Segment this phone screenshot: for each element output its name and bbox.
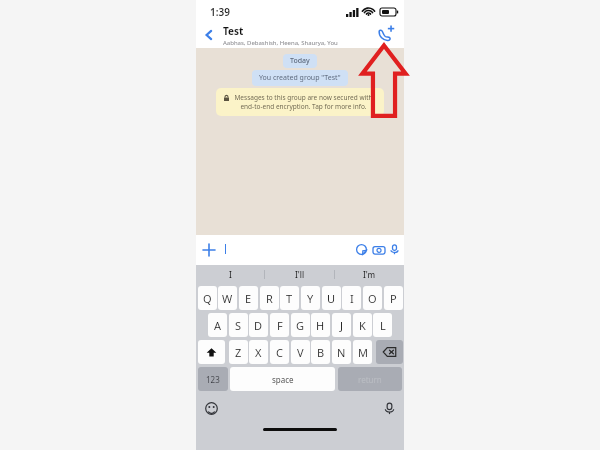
button[interactable]: I [196, 265, 264, 284]
staticText: Messages to this group are now secured w… [231, 93, 376, 111]
button[interactable]: K [353, 313, 372, 337]
staticText: You created group "Test" [259, 73, 341, 83]
button[interactable]: D [249, 313, 268, 337]
button[interactable] [220, 240, 352, 257]
button[interactable]: F [270, 313, 289, 337]
button[interactable]: Emoji [202, 399, 220, 417]
button[interactable]: Camera [371, 242, 386, 257]
staticText: Q [203, 291, 212, 306]
button[interactable]: New call [374, 24, 398, 44]
staticText: I'm [363, 269, 376, 280]
staticText: Today [290, 56, 310, 66]
button[interactable]: L [373, 313, 392, 337]
button[interactable]: I'm [335, 265, 404, 284]
button[interactable]: Voice message [387, 242, 401, 256]
staticText: G [296, 318, 305, 333]
button[interactable]: U [322, 286, 341, 310]
staticText: T [286, 291, 293, 306]
button[interactable]: Stickers [354, 242, 369, 257]
staticText: C [276, 345, 283, 360]
button[interactable]: Backspace [376, 340, 403, 364]
staticText: X [255, 345, 262, 360]
button[interactable]: space [230, 367, 335, 391]
button[interactable]: V [291, 340, 310, 364]
staticText: space [272, 374, 294, 385]
button[interactable]: 123 [198, 367, 228, 391]
staticText: O [368, 291, 377, 306]
staticText: I [229, 269, 232, 280]
button[interactable]: Messages to this group are now secured w… [216, 88, 384, 116]
button[interactable]: Back [198, 24, 220, 46]
button[interactable]: M [353, 340, 372, 364]
staticText: H [316, 318, 325, 333]
staticText: P [390, 291, 397, 306]
button[interactable]: E [239, 286, 258, 310]
staticText: N [337, 345, 346, 360]
staticText: U [327, 291, 336, 306]
button[interactable]: S [229, 313, 248, 337]
staticText: return [358, 374, 382, 385]
button[interactable]: Z [229, 340, 248, 364]
button[interactable]: N [332, 340, 351, 364]
button[interactable]: R [260, 286, 279, 310]
staticText: M [358, 345, 368, 360]
button[interactable]: Shift [198, 340, 225, 364]
button[interactable]: J [332, 313, 351, 337]
staticText: A [214, 318, 222, 333]
button[interactable]: X [249, 340, 268, 364]
button[interactable]: I [342, 286, 361, 310]
staticText: Y [307, 291, 314, 306]
staticText: E [245, 291, 252, 306]
button[interactable]: T [280, 286, 299, 310]
button[interactable]: Dictation [380, 399, 398, 417]
staticText: J [340, 318, 344, 333]
staticText: W [222, 291, 233, 306]
button[interactable]: H [311, 313, 330, 337]
staticText: L [380, 318, 386, 333]
button[interactable]: Y [301, 286, 320, 310]
staticText: Aabhas, Debashish, Heena, Shaurya, You [223, 39, 338, 47]
staticText: Z [235, 345, 242, 360]
button[interactable]: Attach [200, 241, 218, 259]
staticText: Test [223, 24, 244, 38]
staticText: I'll [295, 269, 305, 280]
staticText: R [266, 291, 273, 306]
button[interactable]: P [384, 286, 403, 310]
staticText: 123 [206, 374, 220, 385]
staticText: B [317, 345, 325, 360]
staticText: K [359, 318, 366, 333]
staticText: S [235, 318, 242, 333]
staticText: V [297, 345, 304, 360]
staticText: D [254, 318, 263, 333]
button[interactable]: W [218, 286, 237, 310]
button[interactable]: I'll [265, 265, 334, 284]
button[interactable]: O [363, 286, 382, 310]
button[interactable]: C [270, 340, 289, 364]
staticText: I [350, 291, 354, 306]
staticText: 1:39 [210, 5, 230, 19]
button[interactable]: A [208, 313, 227, 337]
staticText: F [277, 318, 283, 333]
button[interactable]: G [291, 313, 310, 337]
button[interactable]: B [311, 340, 330, 364]
button[interactable]: Q [198, 286, 217, 310]
